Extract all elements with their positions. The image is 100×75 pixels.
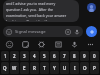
button[interactable]: R	[30, 62, 39, 74]
button[interactable]: 7	[60, 51, 69, 61]
button[interactable]: P	[90, 62, 99, 74]
button[interactable]: 6	[50, 51, 59, 61]
staticText: examination, send back your answer	[6, 13, 67, 18]
button[interactable]: GIF search	[36, 39, 47, 50]
staticText: 7	[63, 53, 66, 59]
button[interactable]: Voice input	[69, 39, 80, 50]
staticText: O	[83, 65, 87, 71]
button[interactable]: More options	[85, 39, 96, 50]
button[interactable]: Attach	[65, 29, 71, 35]
button[interactable]: Emoji keyboard	[4, 39, 15, 50]
staticText: 5	[43, 53, 46, 59]
staticText: 9	[83, 53, 86, 59]
staticText: P	[93, 65, 96, 71]
staticText: E	[23, 65, 26, 71]
button[interactable]: I	[70, 62, 79, 74]
button[interactable]: W	[10, 62, 19, 74]
staticText: Signal message	[15, 29, 46, 35]
button[interactable]: Y	[50, 62, 59, 74]
button[interactable]: Contact avatar	[87, 3, 96, 12]
button[interactable]: Voice message	[74, 29, 80, 35]
staticText: Q	[3, 65, 7, 71]
staticText: 0	[93, 53, 96, 59]
button[interactable]: Add attachment	[86, 26, 97, 37]
staticText: 3	[23, 53, 26, 59]
button[interactable]: Signal message	[3, 26, 83, 37]
button[interactable]: E	[20, 62, 29, 74]
staticText: and I advise you to read every	[6, 1, 56, 6]
button[interactable]: 9	[80, 51, 89, 61]
button[interactable]: 2	[10, 51, 19, 61]
button[interactable]: 3	[20, 51, 29, 61]
staticText: 4	[33, 53, 36, 59]
button[interactable]: 0	[90, 51, 99, 61]
button[interactable]: Q	[1, 62, 9, 74]
staticText: book to me. Be quick with your	[6, 19, 57, 21]
button[interactable]: 8	[70, 51, 79, 61]
button[interactable]: Text formatting	[53, 39, 64, 50]
staticText: Y	[53, 65, 56, 71]
button[interactable]: O	[80, 62, 89, 74]
staticText: I	[74, 65, 76, 71]
staticText: R	[33, 65, 36, 71]
staticText: T	[43, 65, 46, 71]
button[interactable]: 1	[1, 51, 9, 61]
button[interactable]: U	[60, 62, 69, 74]
staticText: W	[12, 65, 17, 71]
button[interactable]: and I advise you to read every	[3, 0, 79, 22]
button[interactable]: T	[40, 62, 49, 74]
staticText: question I ask you. After the	[6, 7, 54, 12]
button[interactable]: Stickers	[20, 39, 31, 50]
staticText: 2	[13, 53, 16, 59]
staticText: U	[63, 65, 67, 71]
button[interactable]: 5	[40, 51, 49, 61]
button[interactable]: 4	[30, 51, 39, 61]
staticText: 1	[4, 53, 7, 59]
staticText: 6	[53, 53, 56, 59]
staticText: 8	[73, 53, 76, 59]
